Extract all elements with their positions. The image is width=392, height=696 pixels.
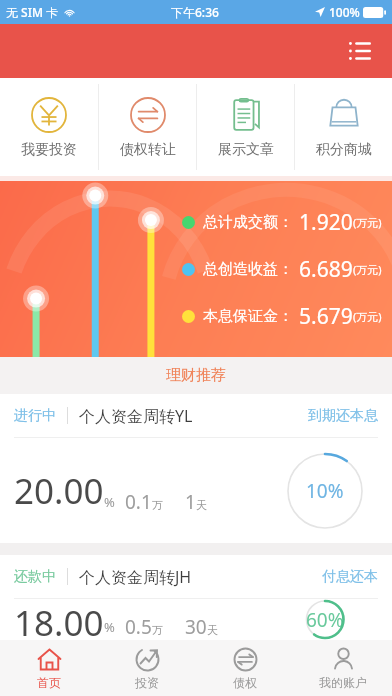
staticText: 100%: [329, 4, 360, 20]
staticText: 0.1: [125, 489, 152, 515]
staticText: 付息还本: [322, 568, 378, 586]
staticText: 总创造收益：: [203, 260, 293, 279]
staticText: %: [104, 493, 115, 511]
button[interactable]: 进行中: [0, 394, 392, 543]
button[interactable]: 我要投资: [0, 78, 98, 176]
button[interactable]: 首页: [0, 640, 98, 696]
staticText: (万元): [353, 215, 382, 230]
staticText: 10%: [306, 478, 344, 504]
staticText: 债权: [233, 675, 257, 690]
staticText: 理财推荐: [166, 366, 226, 385]
staticText: 投资: [135, 675, 159, 690]
staticText: 天: [207, 623, 218, 637]
staticText: 展示文章: [218, 141, 274, 159]
staticText: %: [104, 618, 115, 636]
staticText: (万元): [353, 262, 382, 277]
button[interactable]: 我的账户: [294, 640, 392, 696]
button[interactable]: 展示文章: [197, 78, 294, 176]
staticText: (万元): [353, 309, 382, 324]
staticText: 20.00: [14, 467, 104, 515]
staticText: 30: [185, 614, 207, 640]
staticText: 总计成交额：: [203, 213, 293, 232]
button[interactable]: 还款中: [0, 555, 392, 640]
staticText: 无 SIM 卡: [6, 4, 59, 20]
staticText: 还款中: [14, 568, 56, 586]
staticText: 天: [196, 498, 207, 512]
staticText: 个人资金周转JH: [79, 566, 192, 588]
staticText: 我要投资: [21, 141, 77, 159]
button[interactable]: 债权转让: [99, 78, 196, 176]
staticText: 我的账户: [319, 675, 367, 690]
staticText: 5.679: [299, 302, 353, 331]
staticText: 进行中: [14, 407, 56, 425]
staticText: 万: [152, 623, 163, 637]
staticText: 万: [152, 498, 163, 512]
staticText: 首页: [37, 675, 61, 690]
staticText: 到期还本息: [308, 407, 378, 425]
staticText: 0.5: [125, 614, 152, 640]
button[interactable]: 投资: [98, 640, 196, 696]
staticText: 本息保证金：: [203, 307, 293, 326]
staticText: 1.920: [299, 208, 353, 237]
button[interactable]: Menu: [338, 29, 382, 73]
button[interactable]: 债权: [196, 640, 294, 696]
staticText: 1: [185, 489, 196, 515]
staticText: 18.00: [14, 599, 104, 640]
staticText: 个人资金周转YL: [79, 405, 193, 427]
staticText: 60%: [306, 607, 344, 633]
staticText: 下午6:36: [171, 4, 219, 20]
staticText: 6.689: [299, 255, 353, 284]
button[interactable]: 积分商城: [295, 78, 392, 176]
staticText: 债权转让: [120, 141, 176, 159]
staticText: 积分商城: [316, 141, 372, 159]
